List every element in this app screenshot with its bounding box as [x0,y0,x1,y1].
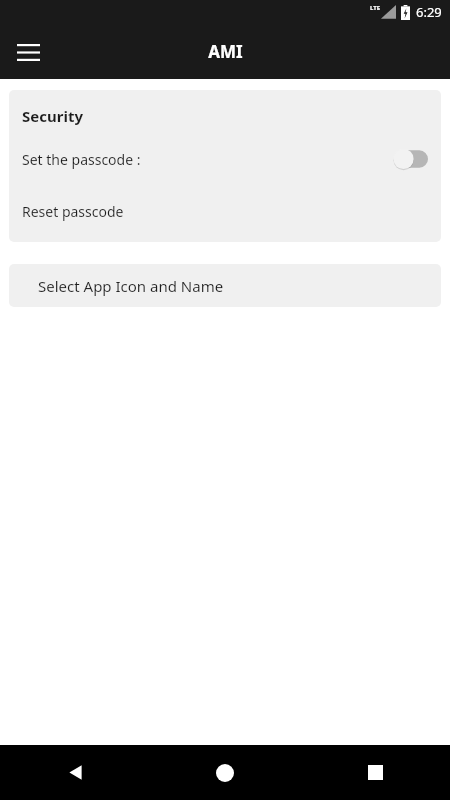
button[interactable]: Back [0,745,150,800]
staticText: LTE [370,4,381,12]
button[interactable]: Home [150,745,300,800]
staticText: Reset passcode [22,202,124,221]
button[interactable]: Open navigation menu [6,30,50,74]
staticText: AMI [208,40,243,63]
staticText: Select App Icon and Name [38,276,224,296]
button[interactable]: Recent apps [300,745,450,800]
staticText: Set the passcode : [22,150,141,169]
button[interactable]: Select App Icon and Name [9,264,441,307]
staticText: 6:29 [416,3,442,21]
button[interactable]: Reset passcode [9,200,441,223]
staticText: Security [22,106,83,126]
button[interactable]: Set the passcode : [9,144,441,174]
button[interactable]: Set the passcode toggle, off [393,147,428,171]
